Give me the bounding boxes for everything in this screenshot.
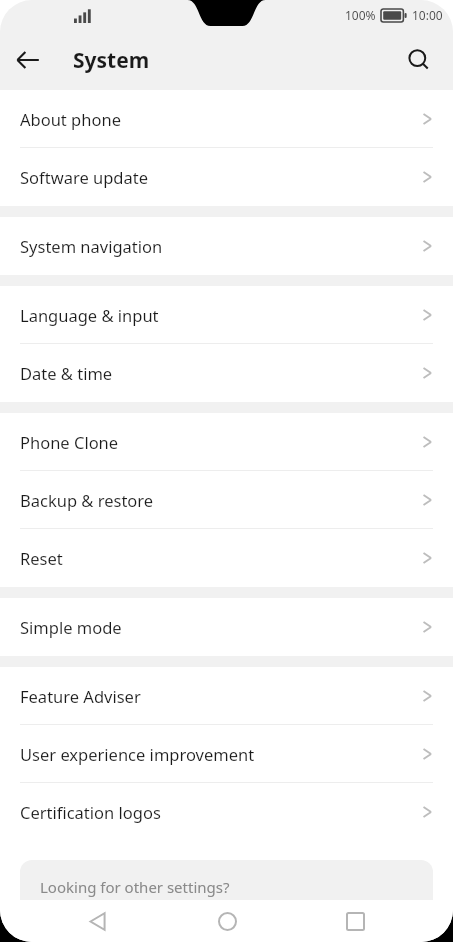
button[interactable]: Feature Adviser: [0, 667, 453, 725]
staticText: Date & time: [20, 362, 113, 384]
button[interactable]: User experience improvement: [0, 725, 453, 783]
staticText: System: [73, 46, 150, 75]
staticText: Feature Adviser: [20, 685, 141, 707]
staticText: About phone: [20, 108, 121, 130]
staticText: Language & input: [20, 304, 159, 326]
button[interactable]: Language & input: [0, 286, 453, 344]
staticText: 10:00: [412, 7, 443, 23]
button[interactable]: Back: [0, 32, 56, 88]
staticText: Backup & restore: [20, 489, 154, 511]
button[interactable]: Home: [197, 900, 257, 942]
button[interactable]: Certification logos: [0, 783, 453, 841]
button[interactable]: Simple mode: [0, 598, 453, 656]
staticText: Software update: [20, 166, 148, 188]
staticText: Simple mode: [20, 616, 122, 638]
button[interactable]: About phone: [0, 90, 453, 148]
button[interactable]: Recent apps: [325, 900, 385, 942]
staticText: Certification logos: [20, 801, 161, 823]
button[interactable]: Phone Clone: [0, 413, 453, 471]
staticText: Looking for other settings?: [40, 877, 230, 897]
staticText: Reset: [20, 547, 63, 569]
button[interactable]: Back: [68, 900, 128, 942]
staticText: User experience improvement: [20, 743, 255, 765]
button[interactable]: Date & time: [0, 344, 453, 402]
button[interactable]: Looking for other settings?: [20, 860, 433, 900]
button[interactable]: Reset: [0, 529, 453, 587]
button[interactable]: Software update: [0, 148, 453, 206]
staticText: 100%: [345, 7, 376, 23]
staticText: Phone Clone: [20, 431, 119, 453]
button[interactable]: System navigation: [0, 217, 453, 275]
staticText: System navigation: [20, 235, 163, 257]
button[interactable]: Search: [393, 34, 445, 86]
button[interactable]: Backup & restore: [0, 471, 453, 529]
